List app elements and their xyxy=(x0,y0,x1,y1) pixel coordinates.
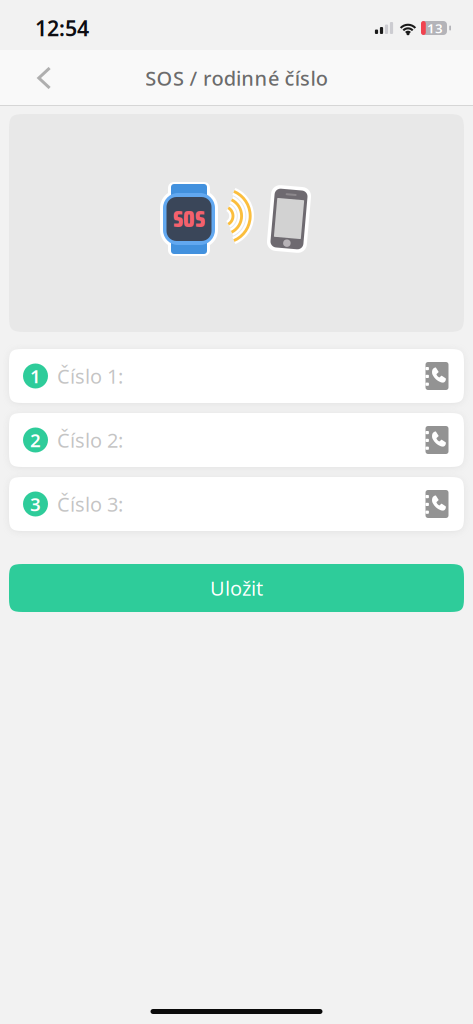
button[interactable]: Choose contact 3 xyxy=(414,477,460,531)
staticText: 1 xyxy=(30,364,41,388)
button[interactable]: 1 xyxy=(9,349,414,403)
button[interactable]: 3 xyxy=(9,477,414,531)
staticText: Číslo 2: xyxy=(57,427,123,453)
staticText: 2 xyxy=(30,428,41,452)
staticText: Číslo 3: xyxy=(57,491,123,517)
staticText: SOS xyxy=(173,201,205,237)
staticText: Číslo 1: xyxy=(57,363,123,389)
staticText: Uložit xyxy=(210,575,263,601)
button[interactable]: Uložit xyxy=(9,564,464,612)
staticText: 13 xyxy=(427,19,443,37)
button[interactable]: Choose contact 2 xyxy=(414,413,460,467)
staticText: 3 xyxy=(30,492,41,516)
button[interactable]: Choose contact 1 xyxy=(414,349,460,403)
button[interactable]: 2 xyxy=(9,413,414,467)
staticText: SOS / rodinné číslo xyxy=(145,65,328,91)
staticText: 12:54 xyxy=(35,14,89,42)
button[interactable]: Back xyxy=(14,53,74,103)
